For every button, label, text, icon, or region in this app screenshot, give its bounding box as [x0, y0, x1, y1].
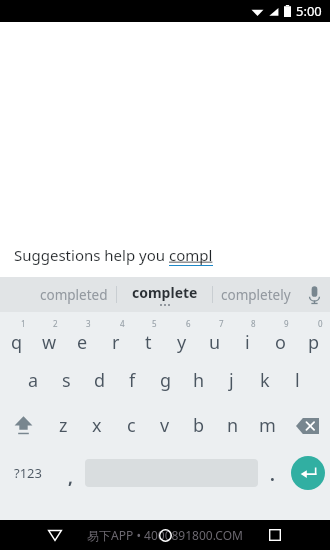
staticText: 8 [251, 318, 256, 329]
button[interactable]: , [55, 448, 85, 498]
staticText: r [112, 330, 120, 355]
staticText: 6 [186, 318, 191, 329]
staticText: , [68, 466, 73, 489]
staticText: f [129, 368, 136, 393]
staticText: l [295, 368, 300, 393]
staticText: c [127, 413, 136, 438]
staticText: t [145, 330, 152, 355]
staticText: g [160, 368, 172, 393]
staticText: 易下APP • 4000891800.COM [0, 527, 330, 543]
staticText: v [160, 413, 170, 438]
staticText: n [227, 413, 239, 438]
button[interactable]: Enter [286, 448, 330, 498]
button[interactable]: Voice input [298, 277, 330, 312]
staticText: 1 [21, 318, 26, 329]
button[interactable]: Recent apps [220, 520, 330, 550]
staticText: u [209, 330, 221, 355]
button[interactable]: completely [214, 277, 298, 312]
staticText: z [59, 413, 68, 438]
staticText: ?123 [14, 464, 42, 482]
staticText: j [229, 368, 234, 393]
button[interactable]: . [258, 448, 286, 498]
staticText: x [92, 413, 102, 438]
button[interactable]: completed [30, 277, 118, 312]
staticText: 5:00 [296, 2, 322, 20]
staticText: 9 [284, 318, 289, 329]
button[interactable]: Home [110, 520, 220, 550]
staticText: compl [169, 245, 213, 265]
staticText: 3 [86, 318, 91, 329]
staticText: s [62, 368, 71, 393]
staticText: 7 [219, 318, 224, 329]
staticText: k [260, 368, 270, 393]
staticText: complete [132, 283, 198, 302]
button[interactable]: l [281, 358, 314, 403]
button[interactable]: 7 [198, 312, 231, 358]
staticText: p [308, 330, 320, 355]
button[interactable]: 2 [33, 312, 66, 358]
button[interactable]: v [148, 403, 182, 448]
button[interactable]: ?123 [0, 448, 55, 498]
staticText: 0 [318, 318, 323, 329]
button[interactable]: s [50, 358, 83, 403]
staticText: d [94, 368, 106, 393]
button[interactable]: z [46, 403, 80, 448]
button[interactable]: Back [0, 520, 110, 550]
button[interactable]: f [116, 358, 149, 403]
button[interactable]: complete [118, 277, 212, 312]
staticText: h [193, 368, 205, 393]
button[interactable]: g [149, 358, 182, 403]
staticText: y [177, 330, 187, 355]
button[interactable]: n [216, 403, 250, 448]
button[interactable]: j [215, 358, 248, 403]
button[interactable]: 6 [165, 312, 198, 358]
button[interactable]: 3 [66, 312, 99, 358]
staticText: m [259, 413, 276, 438]
button[interactable]: m [250, 403, 284, 448]
staticText: q [11, 330, 23, 355]
button[interactable]: 4 [99, 312, 132, 358]
button[interactable]: 8 [231, 312, 264, 358]
staticText: a [28, 368, 39, 393]
staticText: w [42, 330, 57, 355]
staticText: 4 [120, 318, 125, 329]
staticText: Suggestions help you [14, 245, 169, 265]
button[interactable]: d [83, 358, 116, 403]
staticText: o [275, 330, 286, 355]
button[interactable]: Backspace [284, 403, 330, 448]
button[interactable]: 0 [297, 312, 330, 358]
button[interactable]: Shift [0, 403, 46, 448]
staticText: b [193, 413, 205, 438]
button[interactable]: a [16, 358, 50, 403]
button[interactable]: 5 [132, 312, 165, 358]
button[interactable]: k [248, 358, 281, 403]
staticText: . [270, 463, 275, 486]
staticText: i [245, 330, 250, 355]
staticText: 5 [152, 318, 157, 329]
button[interactable]: h [182, 358, 215, 403]
button[interactable]: x [80, 403, 114, 448]
button[interactable]: 9 [264, 312, 297, 358]
button[interactable]: b [182, 403, 216, 448]
staticText: 2 [53, 318, 58, 329]
button[interactable]: 1 [0, 312, 33, 358]
staticText: completed [40, 286, 108, 304]
staticText: e [77, 330, 88, 355]
staticText: completely [221, 286, 291, 304]
button[interactable]: c [114, 403, 148, 448]
